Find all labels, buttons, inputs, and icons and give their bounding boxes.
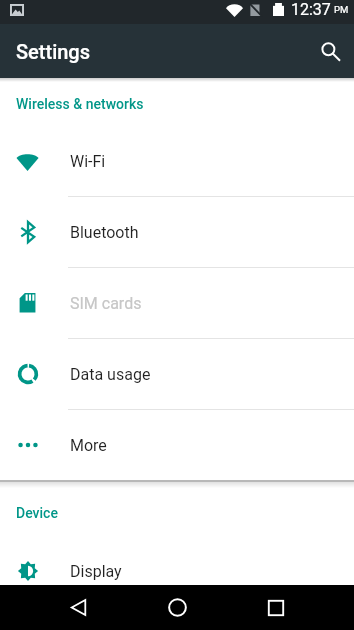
staticText: Data usage bbox=[70, 365, 151, 384]
button[interactable]: Home bbox=[155, 585, 200, 630]
staticText: Wireless & networks bbox=[16, 96, 144, 112]
staticText: Display bbox=[70, 562, 122, 581]
staticText: Bluetooth bbox=[70, 223, 139, 242]
button[interactable]: Search bbox=[310, 31, 350, 71]
button[interactable]: Data usage bbox=[0, 339, 354, 410]
button[interactable]: More bbox=[0, 410, 354, 480]
button[interactable]: Wi-Fi bbox=[0, 126, 354, 197]
staticText: Settings bbox=[16, 40, 91, 63]
staticText: 12:37 bbox=[291, 0, 331, 19]
staticText: PM bbox=[334, 4, 349, 15]
button[interactable]: Display bbox=[0, 536, 354, 585]
button[interactable]: SIM cards bbox=[0, 268, 354, 339]
staticText: More bbox=[70, 436, 107, 455]
staticText: SIM cards bbox=[70, 294, 142, 313]
button[interactable]: Back bbox=[56, 585, 101, 630]
button[interactable]: Bluetooth bbox=[0, 197, 354, 268]
staticText: Wi-Fi bbox=[70, 152, 106, 171]
button[interactable]: Recent apps bbox=[253, 585, 298, 630]
staticText: Device bbox=[16, 505, 58, 521]
